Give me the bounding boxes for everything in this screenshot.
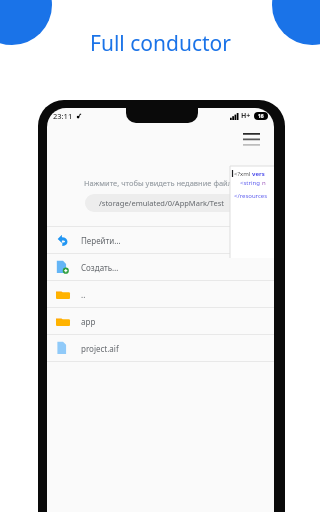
staticText: Перейти… — [81, 235, 121, 246]
staticText: Нажмите, чтобы увидеть недавние файлы — [84, 178, 238, 188]
staticText: 16 — [258, 113, 264, 120]
staticText: /storage/emulated/0/AppMark/Test — [99, 198, 224, 208]
staticText: </resources — [234, 192, 268, 200]
button[interactable]: Menu — [240, 128, 262, 150]
staticText: <?xml — [234, 170, 252, 178]
button[interactable]: /storage/emulated/0/AppMark/Test — [85, 194, 238, 212]
button[interactable]: Создать… — [47, 254, 274, 280]
staticText: Full conductor — [90, 29, 231, 58]
staticText: .. — [81, 289, 86, 300]
staticText: <string — [240, 179, 262, 187]
staticText: H+ — [241, 111, 251, 121]
staticText: project.aif — [81, 343, 119, 354]
staticText: n — [262, 179, 266, 187]
button[interactable]: .. — [47, 281, 274, 307]
button[interactable]: app — [47, 308, 274, 334]
staticText: vers — [252, 170, 265, 178]
button[interactable]: project.aif — [47, 335, 274, 361]
button[interactable]: Перейти… — [47, 227, 274, 253]
staticText: app — [81, 316, 96, 327]
staticText: 23:11 — [53, 111, 73, 121]
staticText: Создать… — [81, 262, 119, 273]
